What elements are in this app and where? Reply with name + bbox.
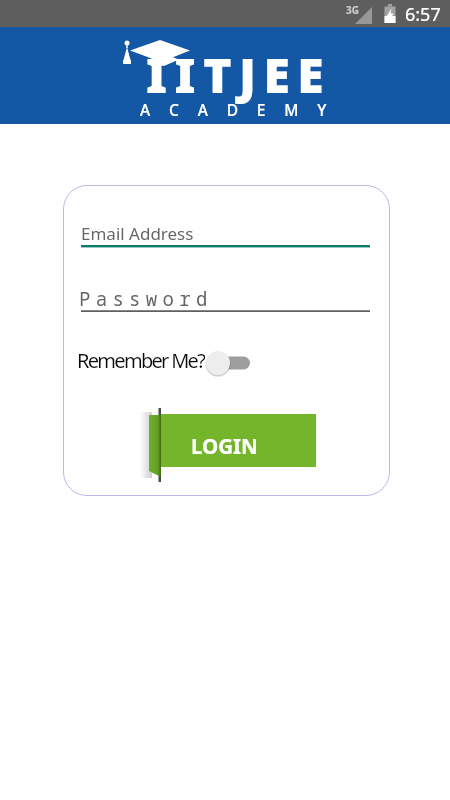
button[interactable]: Email Address xyxy=(79,219,370,247)
staticText: Password xyxy=(79,286,213,310)
staticText: Email Address xyxy=(81,222,194,245)
button[interactable]: Remember Me? xyxy=(76,349,253,377)
staticText: 3G xyxy=(346,3,359,17)
staticText: A C A D E M Y xyxy=(140,99,334,120)
staticText: IITJEE xyxy=(146,42,332,107)
staticText: LOGIN xyxy=(191,432,258,460)
staticText: Remember Me? xyxy=(77,347,205,373)
staticText: 6:57 xyxy=(405,2,441,27)
button[interactable]: LOGIN xyxy=(137,408,316,482)
button[interactable]: Password xyxy=(77,285,370,310)
